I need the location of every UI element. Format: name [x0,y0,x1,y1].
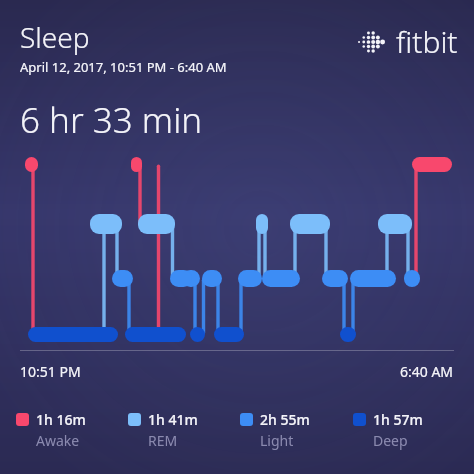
button[interactable]: 2h 55m [240,410,353,450]
staticText: Awake [36,431,80,450]
button[interactable]: 1h 57m [353,410,466,450]
staticText: 1h 41m [148,410,198,429]
staticText: 1h 16m [36,410,86,429]
staticText: 6:40 AM [400,362,454,381]
staticText: 2h 55m [260,410,310,429]
button[interactable]: Sleep stages chart [0,152,474,350]
button[interactable]: 1h 16m [16,410,128,450]
staticText: Light [260,431,294,450]
staticText: 6 hr 33 min [20,96,203,144]
staticText: Sleep [20,18,90,56]
staticText: 10:51 PM [20,362,81,381]
staticText: April 12, 2017, 10:51 PM - 6:40 AM [20,58,227,76]
button[interactable]: Fitbit [358,21,458,62]
staticText: Deep [373,431,408,450]
staticText: fitbit [396,21,458,62]
staticText: 1h 57m [373,410,423,429]
staticText: REM [148,431,178,450]
button[interactable]: 1h 41m [128,410,240,450]
